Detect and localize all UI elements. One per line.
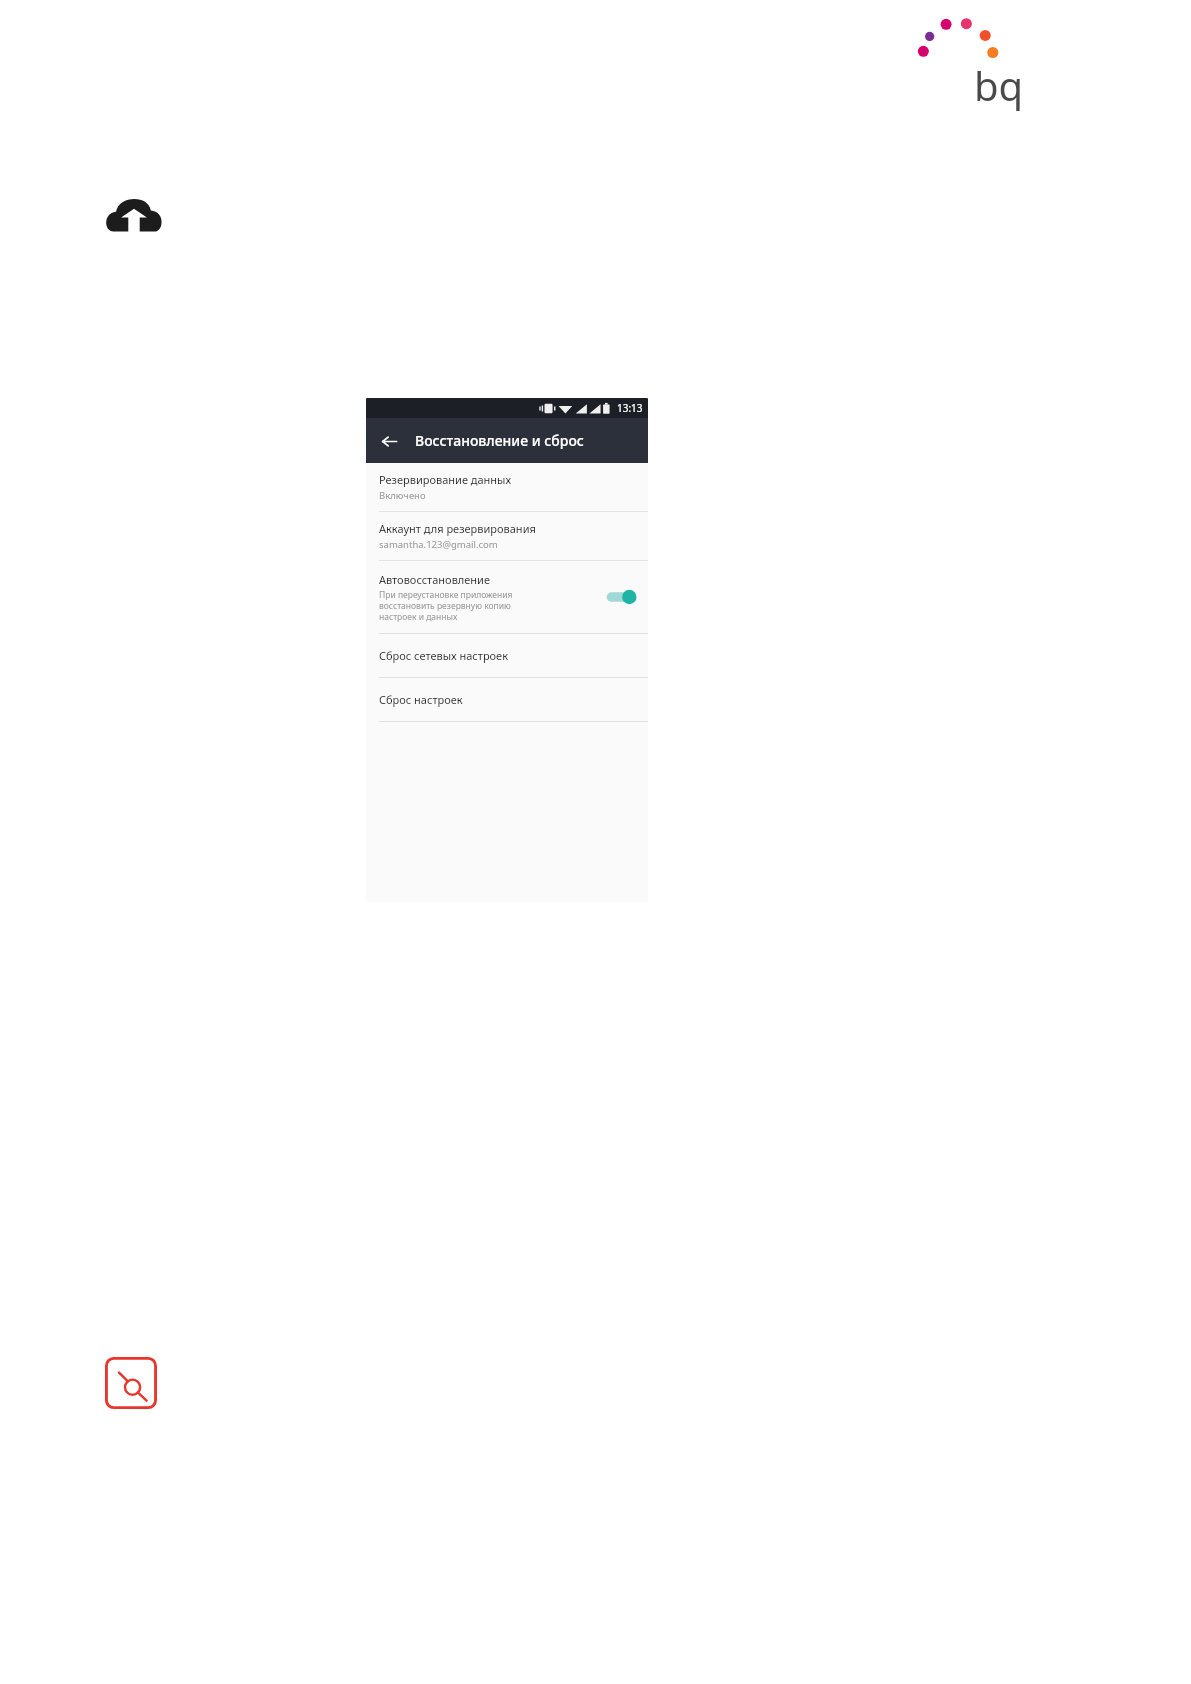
- staticText: Аккаунт для резервирования: [379, 521, 536, 536]
- button[interactable]: Резервирование данных: [366, 463, 648, 511]
- button[interactable]: Автовосстановление: [366, 561, 648, 633]
- button[interactable]: Сброс сетевых настроек: [366, 634, 648, 677]
- staticText: samantha.123@gmail.com: [379, 538, 498, 551]
- staticText: 13:13: [617, 401, 643, 415]
- button[interactable]: Note: [105, 1357, 157, 1409]
- button[interactable]: Аккаунт для резервирования: [366, 512, 648, 560]
- staticText: При переустановке приложения восстановит…: [379, 589, 513, 622]
- other: Backup to cloud: [104, 192, 164, 236]
- button[interactable]: Сброс настроек: [366, 678, 648, 721]
- staticText: Сброс настроек: [379, 692, 463, 707]
- staticText: Восстановление и сброс: [415, 431, 584, 450]
- staticText: Сброс сетевых настроек: [379, 648, 509, 663]
- staticText: bq: [974, 58, 1024, 112]
- button[interactable]: Auto restore toggle: [605, 588, 637, 606]
- button[interactable]: Back: [374, 426, 404, 456]
- staticText: Резервирование данных: [379, 472, 512, 487]
- staticText: Автовосстановление: [379, 572, 491, 587]
- staticText: Включено: [379, 489, 426, 502]
